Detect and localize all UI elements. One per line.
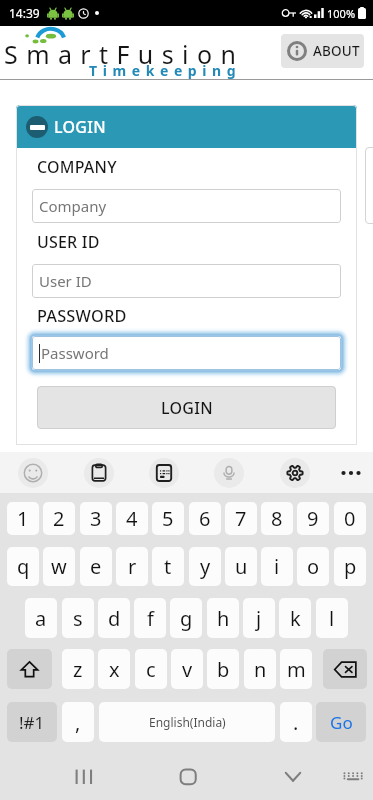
button[interactable]: Emoji [18,458,48,488]
staticText: User ID [39,271,92,291]
staticText: e [90,553,102,580]
button[interactable]: 9 [297,502,329,535]
button[interactable]: c [135,649,167,689]
button[interactable]: x [98,649,130,689]
button[interactable]: d [98,598,130,638]
button[interactable]: l [316,598,348,638]
staticText: 8 [271,505,283,532]
button[interactable]: 7 [225,502,257,535]
button[interactable]: Shift [7,649,52,689]
button[interactable]: s [62,598,94,638]
staticText: . [293,709,299,736]
staticText: Timekeeping [89,61,242,80]
staticText: PASSWORD [37,305,127,327]
button[interactable]: q [7,547,39,586]
button[interactable]: j [243,598,275,638]
button[interactable]: 6 [189,502,221,535]
staticText: i [274,553,280,580]
staticText: t [164,553,172,580]
button[interactable]: English(India) [99,702,275,742]
button[interactable]: t [152,547,184,586]
staticText: f [147,605,154,632]
staticText: q [17,553,30,580]
staticText: k [290,605,301,632]
staticText: 0 [344,505,356,532]
button[interactable]: Company [32,189,341,223]
button[interactable]: p [334,547,366,586]
staticText: 100% [327,6,356,21]
staticText: 7 [235,505,247,532]
button[interactable]: Clipboard [84,458,114,488]
button[interactable]: h [207,598,239,638]
staticText: 3 [90,505,102,532]
staticText: !#1 [19,711,45,734]
button[interactable]: f [134,598,166,638]
button[interactable]: Keypad [149,458,179,488]
button[interactable]: k [279,598,311,638]
staticText: c [146,656,156,683]
staticText: 2 [53,505,65,532]
staticText: Company [39,196,107,216]
staticText: d [108,605,121,632]
button[interactable]: o [297,547,329,586]
staticText: n [254,656,267,683]
staticText: ABOUT [313,42,360,60]
button[interactable]: ABOUT [281,34,364,68]
staticText: a [35,605,47,632]
button[interactable]: r [116,547,148,586]
staticText: v [182,656,193,683]
staticText: m [287,656,306,683]
staticText: z [73,656,83,683]
button[interactable]: !#1 [7,702,57,742]
button[interactable]: Home [170,757,206,793]
button[interactable]: LOGIN [16,105,357,148]
button[interactable]: . [280,702,312,742]
staticText: Password [41,343,109,363]
button[interactable]: 3 [80,502,112,535]
button[interactable]: n [244,649,276,689]
button[interactable]: m [280,649,312,689]
staticText: COMPANY [37,156,117,178]
button[interactable]: 8 [261,502,293,535]
button[interactable]: 1 [7,502,39,535]
button[interactable]: i [261,547,293,586]
button[interactable]: 5 [152,502,184,535]
button[interactable]: y [189,547,221,586]
button[interactable]: Backspace [323,649,367,689]
button[interactable]: More options [336,458,366,488]
staticText: 5 [162,505,174,532]
button[interactable]: a [25,598,57,638]
button[interactable]: 4 [116,502,148,535]
button[interactable]: v [171,649,203,689]
button[interactable]: User ID [32,264,341,298]
button[interactable]: , [62,702,94,742]
staticText: b [217,656,230,683]
button[interactable]: z [62,649,94,689]
button[interactable]: Go [316,702,366,742]
button[interactable]: Keyboard [334,757,370,793]
button[interactable]: Hide keyboard [275,757,311,793]
button[interactable]: e [80,547,112,586]
button[interactable]: Settings [280,458,310,488]
button[interactable]: g [170,598,202,638]
staticText: w [51,553,67,580]
staticText: SmartFusion [4,37,245,71]
staticText: l [329,605,335,632]
staticText: 6 [199,505,211,532]
button[interactable]: 2 [43,502,75,535]
button[interactable]: u [225,547,257,586]
staticText: , [75,709,81,736]
button[interactable]: Recents [66,757,102,793]
staticText: 14:39 [9,5,40,21]
staticText: 9 [307,505,319,532]
button[interactable]: b [207,649,239,689]
button[interactable]: 0 [334,502,366,535]
button[interactable]: w [43,547,75,586]
staticText: LOGIN [161,397,213,419]
button[interactable]: Password [32,336,341,370]
staticText: h [217,605,230,632]
staticText: o [307,553,320,580]
staticText: y [200,553,211,580]
button[interactable]: LOGIN [37,386,336,429]
button[interactable]: Voice input [214,458,244,488]
